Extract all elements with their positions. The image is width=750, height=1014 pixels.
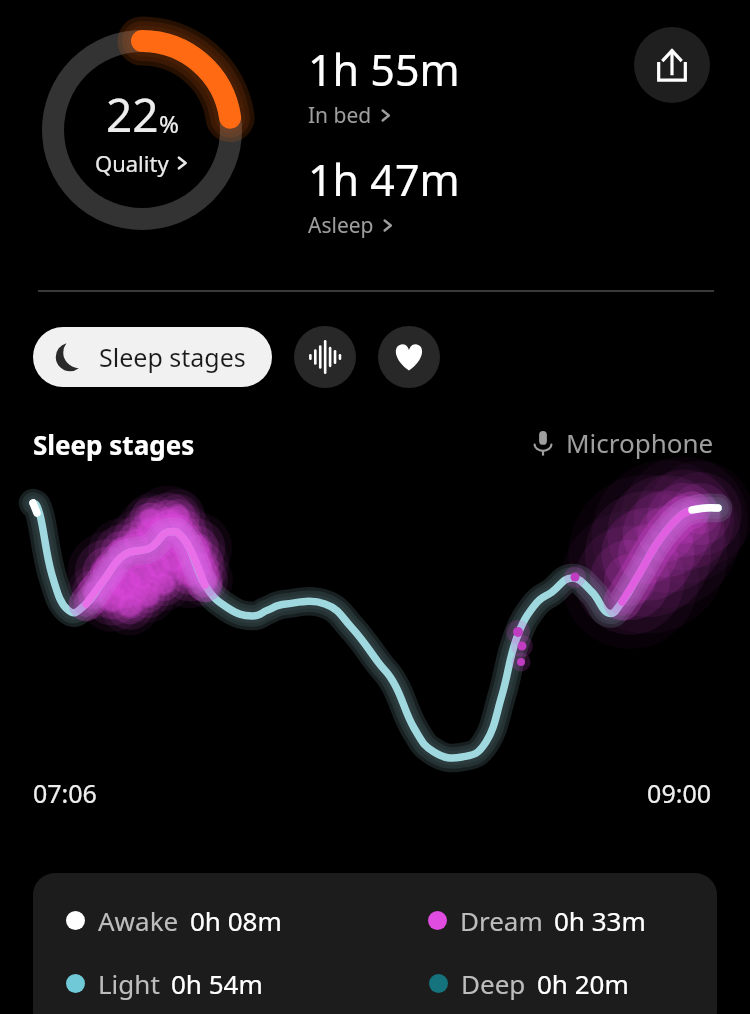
staticText: Dream (460, 903, 543, 938)
button[interactable]: Sleep stages (33, 327, 272, 387)
staticText: 0h 08m (190, 903, 282, 938)
button[interactable]: Asleep (308, 211, 394, 240)
staticText: Microphone (566, 425, 714, 460)
staticText: 0h 33m (554, 903, 646, 938)
staticText: Deep (461, 966, 526, 1001)
staticText: 22 (106, 83, 159, 146)
button[interactable]: Sleep audio recordings (294, 326, 356, 388)
staticText: 07:06 (33, 776, 97, 810)
staticText: Quality (95, 148, 169, 178)
staticText: In bed (308, 101, 372, 130)
button[interactable]: Share (634, 27, 710, 103)
staticText: Awake (98, 903, 179, 938)
staticText: 0h 54m (171, 966, 263, 1001)
staticText: 0h 20m (537, 966, 629, 1001)
button[interactable]: Microphone (528, 425, 714, 460)
staticText: 1h 55m (308, 40, 460, 99)
staticText: % (159, 107, 179, 140)
staticText: Sleep stages (99, 340, 246, 374)
button[interactable]: Heart rate (378, 326, 440, 388)
button[interactable]: Sleep quality 22 percent (42, 30, 242, 230)
button[interactable]: In bed (308, 101, 392, 130)
staticText: Sleep stages (33, 427, 195, 462)
staticText: 1h 47m (308, 150, 460, 209)
staticText: Asleep (308, 211, 374, 240)
button[interactable]: Awake (33, 873, 717, 1014)
staticText: 09:00 (647, 776, 711, 810)
staticText: Light (98, 966, 160, 1001)
